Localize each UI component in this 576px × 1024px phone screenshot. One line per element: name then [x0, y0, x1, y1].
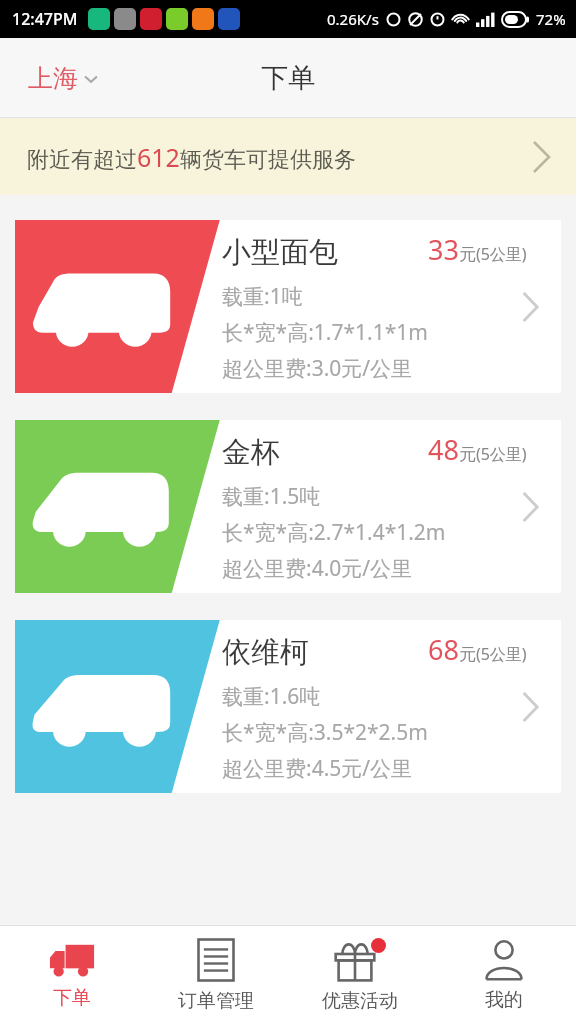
staticText: 附近有超过612辆货车可提供服务 [27, 140, 356, 174]
other: 我的 [484, 939, 524, 981]
staticText: 72% [536, 9, 566, 29]
staticText: 33元(5公里) [428, 231, 527, 268]
button[interactable]: 小型面包 [15, 220, 561, 393]
button[interactable]: 金杯 [15, 420, 561, 593]
staticText: 小型面包 [222, 234, 338, 271]
staticText: 载重:1吨 [222, 282, 303, 311]
staticText: 长*宽*高:1.7*1.1*1m [222, 318, 428, 347]
staticText: 超公里费:4.5元/公里 [222, 754, 413, 783]
button[interactable]: 上海 [24, 59, 102, 98]
other: 订单管理 [197, 938, 235, 982]
staticText: 下单 [261, 61, 315, 95]
button[interactable]: 附近有超过612辆货车可提供服务 [0, 118, 576, 195]
other: 下单 [49, 941, 95, 979]
staticText: 超公里费:4.0元/公里 [222, 554, 413, 583]
staticText: 上海 [28, 63, 78, 94]
staticText: 超公里费:3.0元/公里 [222, 354, 413, 383]
staticText: 依维柯 [222, 634, 309, 671]
button[interactable]: 我的 [432, 926, 576, 1024]
staticText: 48元(5公里) [428, 431, 527, 468]
button[interactable]: 下单 [0, 926, 144, 1024]
staticText: 长*宽*高:3.5*2*2.5m [222, 718, 428, 747]
staticText: 订单管理 [178, 989, 254, 1013]
staticText: 68元(5公里) [428, 631, 527, 668]
other: 优惠活动 [334, 938, 386, 982]
staticText: 我的 [485, 988, 523, 1012]
staticText: 长*宽*高:2.7*1.4*1.2m [222, 518, 446, 547]
staticText: 金杯 [222, 434, 280, 471]
staticText: 优惠活动 [322, 989, 398, 1013]
button[interactable]: 订单管理 [144, 926, 288, 1024]
button[interactable]: 优惠活动 [288, 926, 432, 1024]
staticText: 0.26K/s [327, 9, 379, 29]
staticText: 下单 [53, 986, 91, 1010]
staticText: 载重:1.5吨 [222, 482, 321, 511]
staticText: 12:47PM [12, 8, 78, 30]
button[interactable]: 依维柯 [15, 620, 561, 793]
staticText: 载重:1.6吨 [222, 682, 321, 711]
